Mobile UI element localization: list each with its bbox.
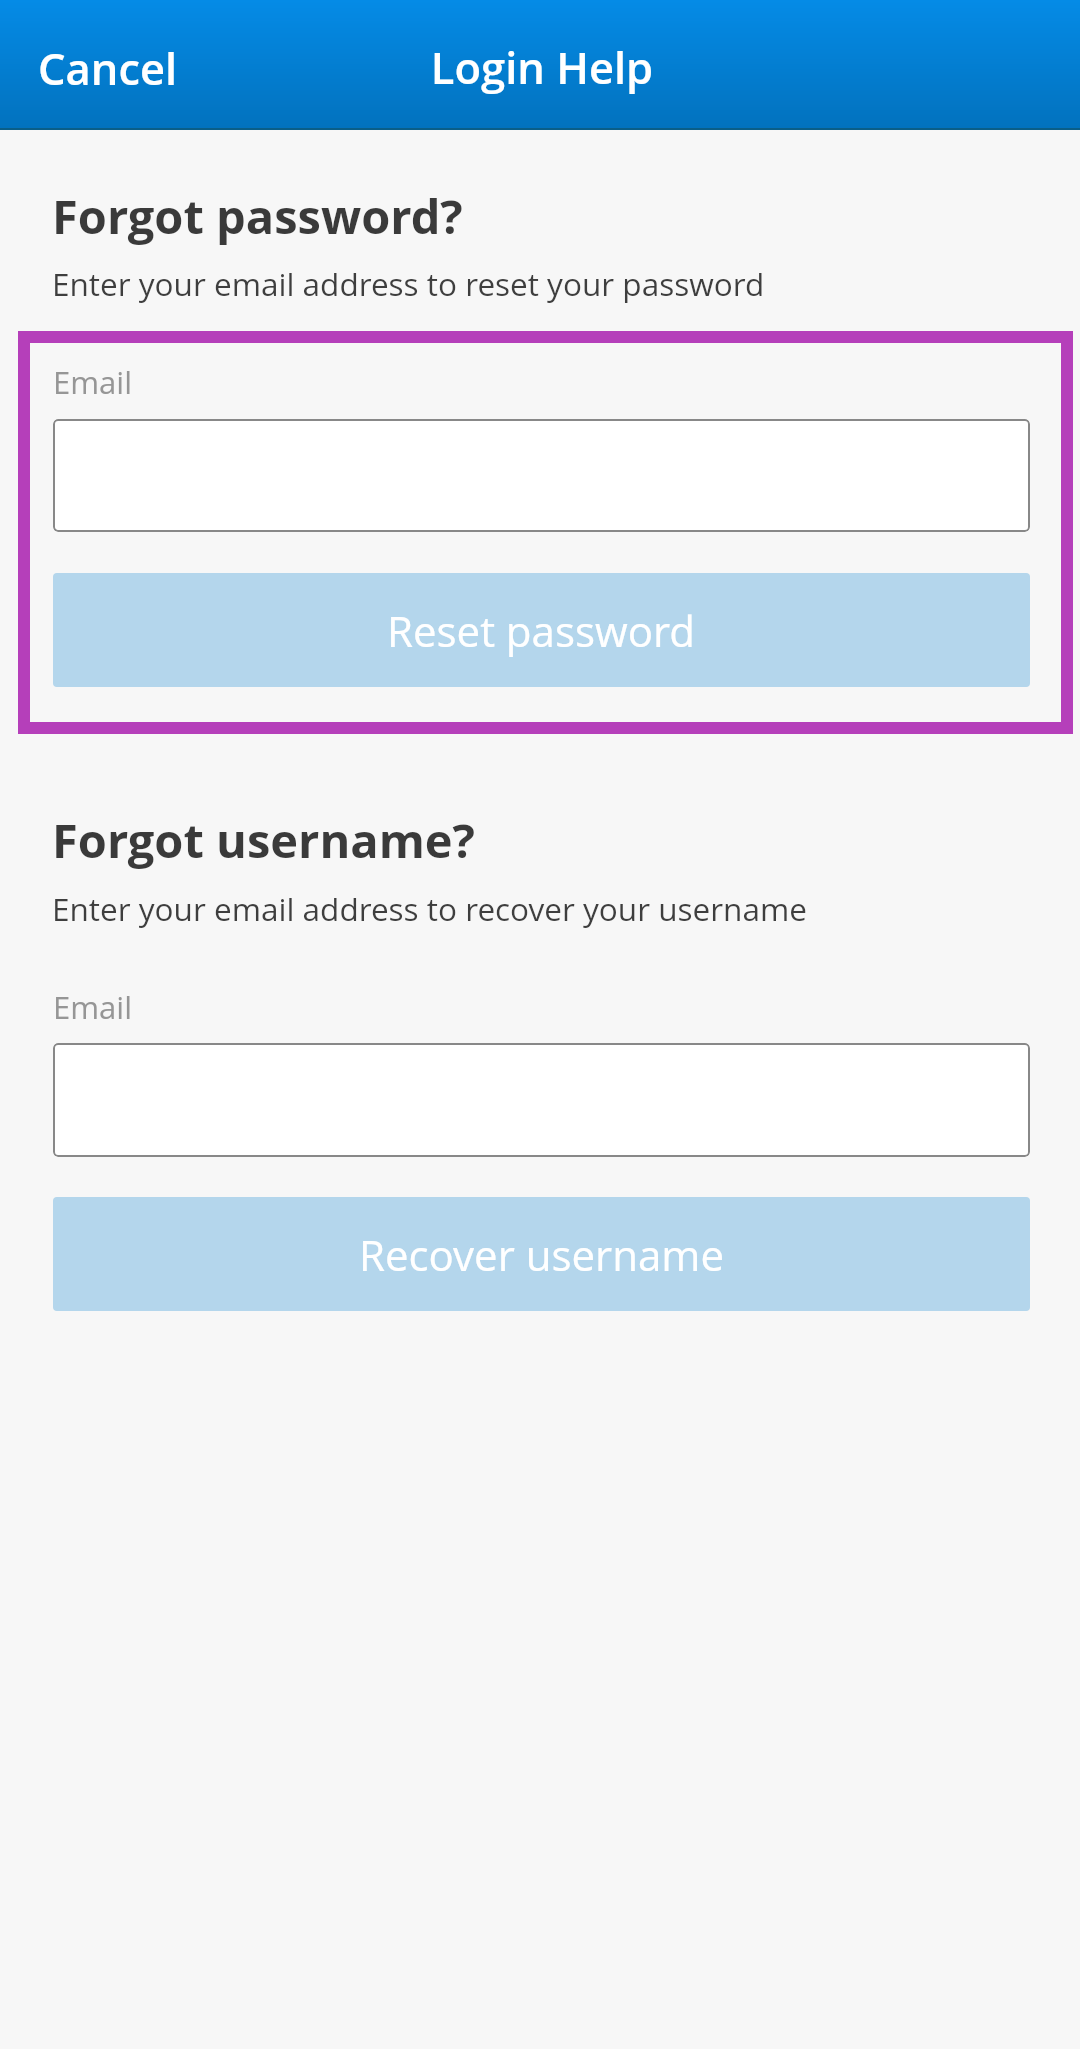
staticText: Email (53, 361, 132, 403)
staticText: Forgot password? (52, 184, 463, 248)
button[interactable]: Recover username (53, 1197, 1030, 1311)
staticText: Login Help (2, 38, 1080, 97)
staticText: Enter your email address to reset your p… (52, 262, 765, 305)
staticText: Recover username (359, 1226, 724, 1283)
button[interactable]: Email address for password reset (53, 419, 1030, 532)
staticText: Email (53, 986, 132, 1028)
button[interactable]: Email address for username recovery (53, 1043, 1030, 1157)
staticText: Forgot username? (52, 808, 476, 872)
staticText: Cancel (38, 39, 178, 98)
button[interactable]: Cancel (20, 0, 196, 128)
button[interactable]: Reset password (53, 573, 1030, 687)
staticText: Enter your email address to recover your… (52, 887, 807, 930)
staticText: Reset password (387, 602, 696, 659)
